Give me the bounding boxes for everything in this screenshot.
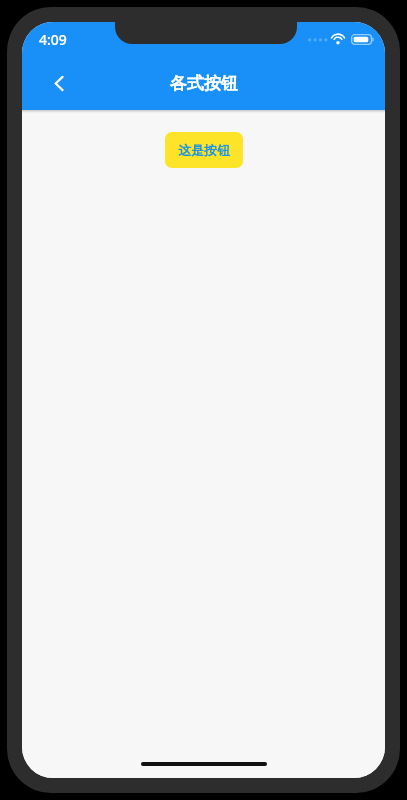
staticText: 4:09 <box>39 30 67 49</box>
staticText: DEBUG <box>360 22 385 27</box>
staticText: 这是按钮 <box>178 142 230 158</box>
button[interactable]: 这是按钮 <box>165 132 243 168</box>
staticText: 各式按钮 <box>170 73 238 94</box>
button[interactable]: Back <box>43 67 75 99</box>
